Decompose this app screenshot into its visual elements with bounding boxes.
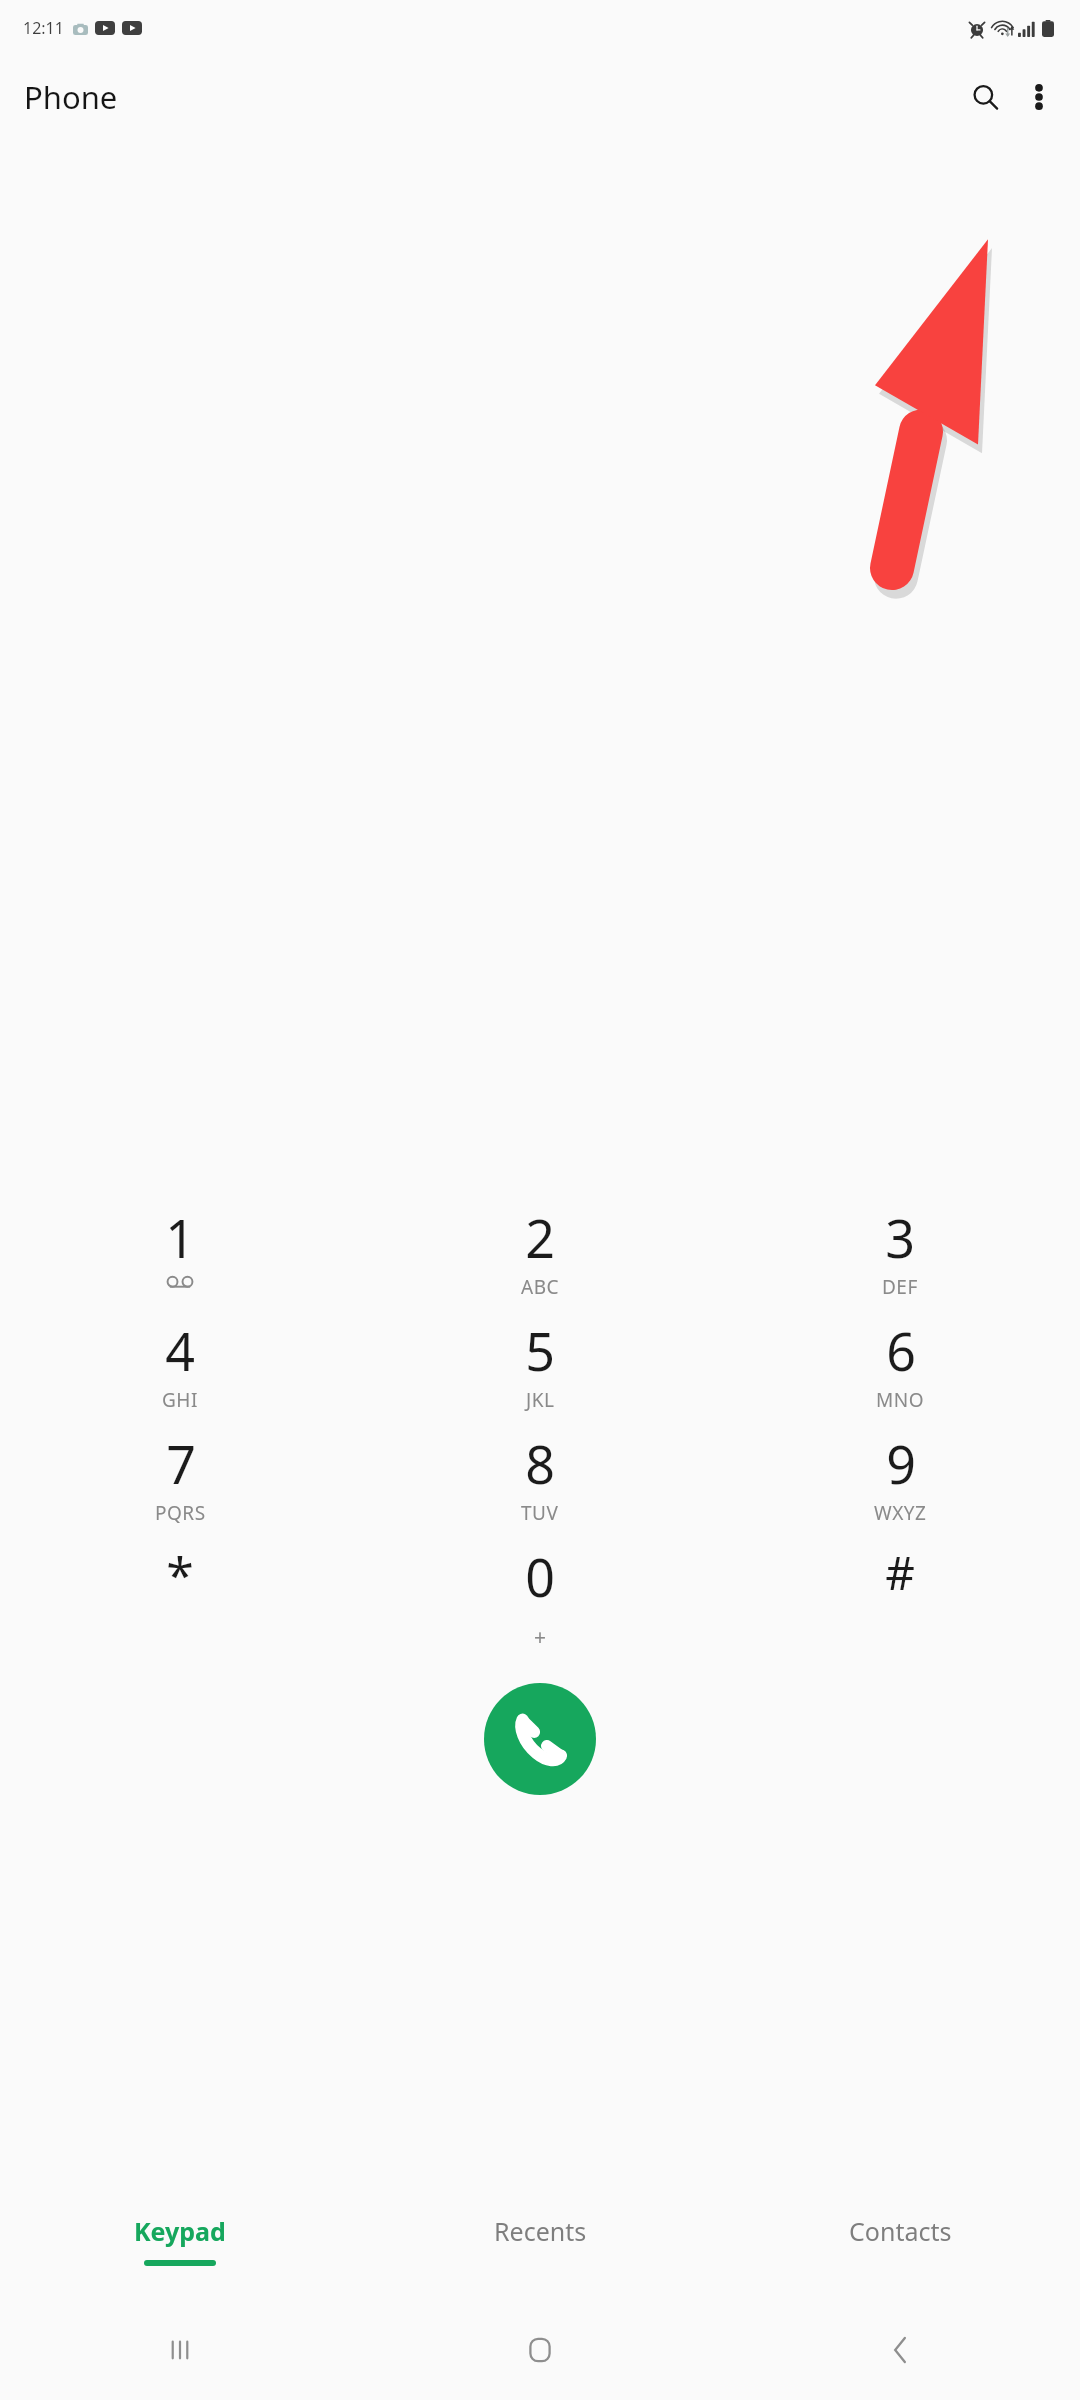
staticText: JKL	[526, 1387, 555, 1413]
button[interactable]: 5	[360, 1315, 720, 1428]
button[interactable]: Recent apps	[0, 2300, 360, 2400]
button[interactable]: *	[0, 1541, 360, 1661]
button[interactable]: 6	[720, 1315, 1080, 1428]
staticText: *	[166, 1541, 194, 1609]
button[interactable]: 9	[720, 1428, 1080, 1541]
staticText: #	[885, 1541, 915, 1604]
staticText: 12:11	[23, 17, 64, 39]
staticText: 9	[886, 1428, 916, 1499]
staticText: GHI	[162, 1387, 198, 1413]
staticText: 6	[886, 1315, 916, 1386]
staticText: 3	[885, 1202, 915, 1273]
staticText: WXYZ	[874, 1500, 927, 1526]
staticText: ABC	[521, 1274, 559, 1300]
button[interactable]: 7	[0, 1428, 360, 1541]
staticText: Keypad	[134, 2214, 226, 2248]
button[interactable]: Back	[720, 2300, 1080, 2400]
button[interactable]: 4	[0, 1315, 360, 1428]
staticText: MNO	[876, 1387, 925, 1413]
staticText: Recents	[494, 2214, 587, 2248]
staticText: 1	[165, 1202, 195, 1273]
staticText: PQRS	[155, 1500, 206, 1526]
button[interactable]: Recents	[360, 2192, 720, 2300]
staticText: DEF	[882, 1274, 918, 1300]
staticText: 0	[525, 1541, 555, 1612]
staticText: 5	[525, 1315, 555, 1386]
staticText: 2	[525, 1202, 555, 1273]
button[interactable]: Call	[484, 1683, 596, 1795]
button[interactable]: Search	[958, 70, 1012, 124]
button[interactable]: Home	[360, 2300, 720, 2400]
button[interactable]: 3	[720, 1202, 1080, 1315]
staticText: TUV	[521, 1500, 559, 1526]
button[interactable]: #	[720, 1541, 1080, 1661]
button[interactable]: 1	[0, 1202, 360, 1315]
button[interactable]: More options	[1012, 70, 1066, 124]
button[interactable]: Contacts	[720, 2192, 1080, 2300]
staticText: Contacts	[849, 2214, 952, 2248]
button[interactable]: Keypad	[0, 2192, 360, 2300]
staticText: 4	[165, 1315, 195, 1386]
staticText: 7	[166, 1428, 196, 1499]
staticText: 8	[525, 1428, 555, 1499]
button[interactable]: 0	[360, 1541, 720, 1661]
staticText: +	[534, 1623, 547, 1652]
button[interactable]: 2	[360, 1202, 720, 1315]
staticText: Phone	[24, 76, 118, 118]
button[interactable]: 8	[360, 1428, 720, 1541]
